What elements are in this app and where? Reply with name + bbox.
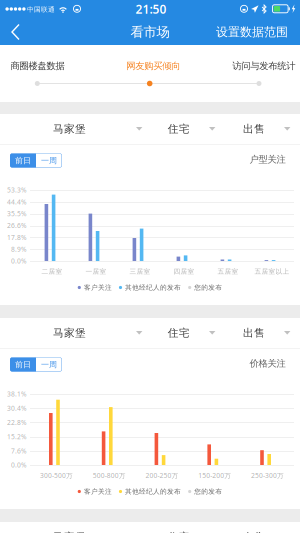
staticText: 商圈楼盘数据: [11, 60, 65, 72]
button[interactable]: 前日: [10, 153, 36, 167]
staticText: 您的发布: [194, 283, 222, 292]
staticText: 30.4%: [7, 404, 27, 413]
staticText: 7.6%: [11, 446, 27, 455]
staticText: 26.6%: [7, 221, 27, 230]
staticText: 户型关注: [249, 154, 285, 165]
button[interactable]: 出售: [220, 522, 300, 533]
button[interactable]: 网友购买倾向: [108, 57, 198, 75]
staticText: 五居室以上: [254, 267, 289, 276]
staticText: 住宅: [168, 530, 190, 533]
staticText: 250-300万: [251, 471, 284, 480]
button[interactable]: 访问与发布统计: [219, 57, 300, 75]
staticText: 8.9%: [11, 245, 27, 254]
staticText: 客户关注: [84, 487, 112, 496]
staticText: 网友购买倾向: [126, 60, 180, 72]
staticText: 150-200万: [198, 471, 231, 480]
staticText: 前日: [15, 360, 31, 369]
staticText: 300-500万: [40, 471, 73, 480]
staticText: 17.8%: [7, 233, 27, 242]
staticText: 二居室: [41, 267, 62, 276]
staticText: 住宅: [168, 122, 190, 135]
staticText: 22.8%: [7, 418, 27, 427]
staticText: 15.2%: [7, 432, 27, 441]
button[interactable]: 马家堡: [0, 114, 145, 144]
staticText: 出售: [243, 122, 265, 135]
staticText: 客户关注: [84, 283, 112, 292]
staticText: 200-250万: [145, 471, 178, 480]
button[interactable]: 出售: [220, 114, 300, 144]
staticText: 访问与发布统计: [232, 60, 295, 72]
staticText: 住宅: [168, 326, 190, 339]
button[interactable]: 商圈楼盘数据: [0, 57, 83, 75]
staticText: 三居室: [129, 267, 150, 276]
staticText: 马家堡: [53, 326, 86, 339]
staticText: 五居室: [217, 267, 238, 276]
staticText: 44.4%: [7, 197, 27, 206]
button[interactable]: 前日: [10, 357, 36, 371]
staticText: 一周: [41, 156, 57, 165]
staticText: 价格关注: [249, 358, 285, 369]
staticText: 其他经纪人的发布: [125, 487, 181, 496]
staticText: 前日: [15, 156, 31, 165]
button[interactable]: 设置数据范围: [208, 19, 288, 45]
staticText: 一周: [41, 360, 57, 369]
button[interactable]: 住宅: [145, 522, 220, 533]
button[interactable]: 一周: [36, 357, 62, 371]
staticText: 出售: [243, 326, 265, 339]
button[interactable]: 马家堡: [0, 318, 145, 348]
button[interactable]: Back: [0, 19, 36, 45]
staticText: 四居室: [173, 267, 194, 276]
button[interactable]: 住宅: [145, 318, 220, 348]
button[interactable]: 出售: [220, 318, 300, 348]
staticText: 出售: [243, 530, 265, 533]
staticText: 38.1%: [7, 390, 27, 398]
staticText: 看市场: [130, 24, 169, 40]
staticText: 0.0%: [11, 461, 27, 469]
button[interactable]: 住宅: [145, 114, 220, 144]
button[interactable]: 一周: [36, 153, 62, 167]
staticText: 53.3%: [7, 186, 27, 194]
staticText: 一居室: [85, 267, 106, 276]
button[interactable]: 马家堡: [0, 522, 145, 533]
staticText: 马家堡: [53, 530, 86, 533]
staticText: 500-800万: [93, 471, 126, 480]
staticText: 35.5%: [7, 209, 27, 218]
staticText: 中国联通: [27, 5, 55, 14]
staticText: 21:50: [135, 1, 166, 17]
staticText: 其他经纪人的发布: [125, 283, 181, 292]
staticText: 0.0%: [11, 257, 27, 265]
staticText: 您的发布: [194, 487, 222, 496]
staticText: 马家堡: [53, 122, 86, 135]
staticText: 设置数据范围: [216, 25, 288, 39]
